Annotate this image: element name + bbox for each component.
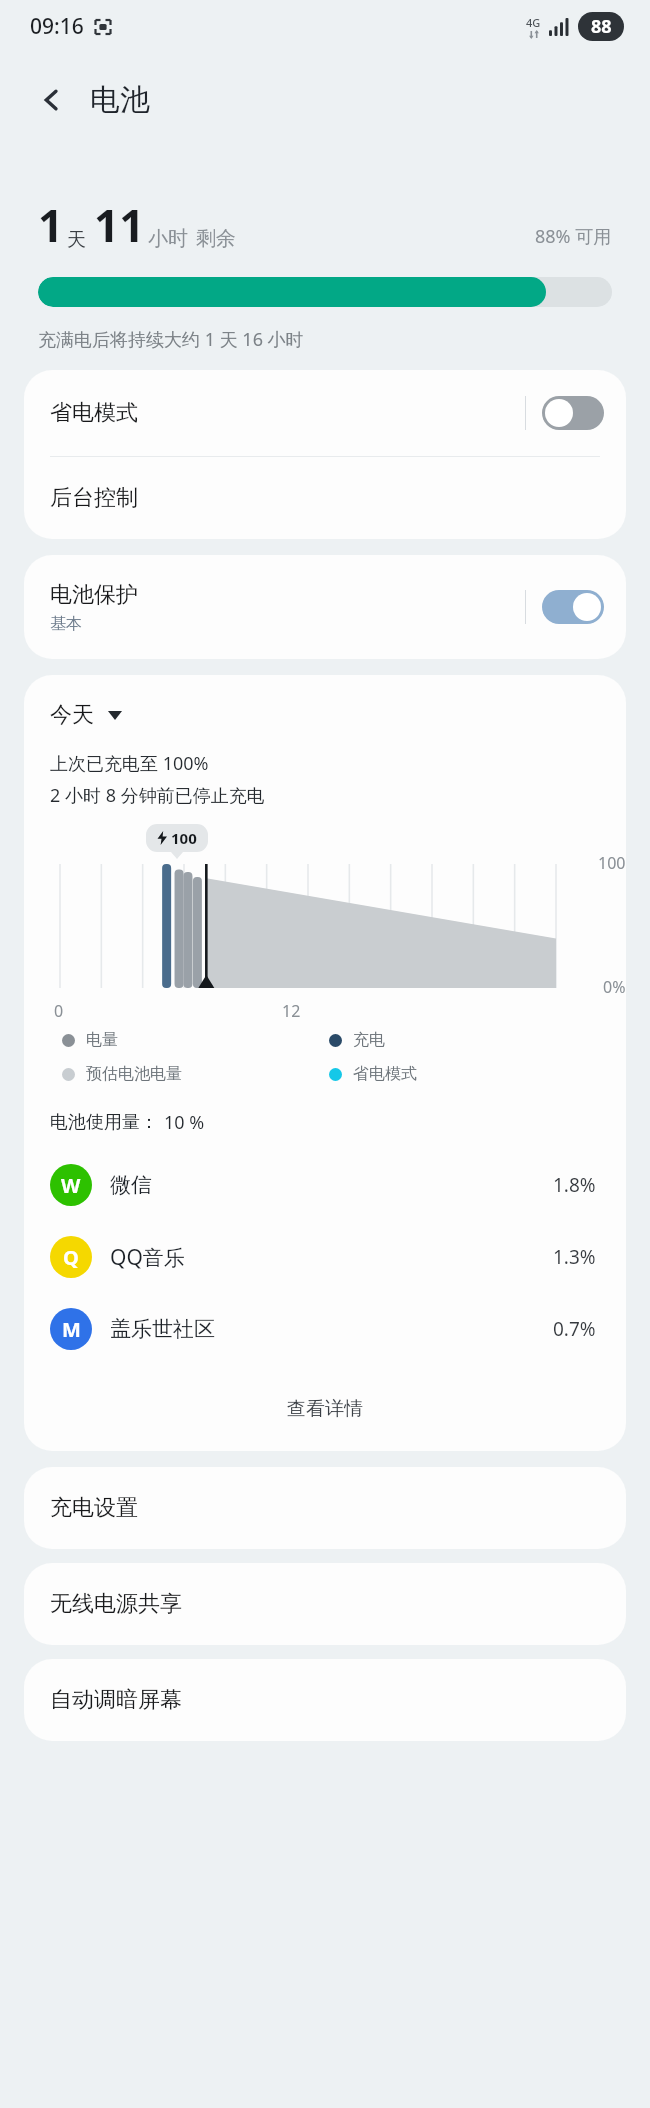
button[interactable]: Q — [24, 1221, 626, 1293]
staticText: 12 — [282, 1000, 301, 1022]
staticText: M — [62, 1316, 81, 1343]
staticText: 今天 — [50, 701, 94, 729]
staticText: 2 小时 8 分钟前已停止充电 — [50, 783, 265, 808]
staticText: 100 — [598, 852, 626, 874]
button[interactable]: 自动调暗屏幕 — [24, 1659, 626, 1741]
button[interactable]: 今天 — [50, 701, 122, 729]
staticText: QQ音乐 — [110, 1243, 185, 1272]
button[interactable]: 充电设置 — [24, 1467, 626, 1549]
staticText: 上次已充电至 100% — [50, 751, 209, 776]
staticText: 查看详情 — [287, 1397, 363, 1421]
staticText: 电池 — [90, 81, 150, 119]
button[interactable]: 查看详情 — [24, 1373, 626, 1445]
staticText: 省电模式 — [353, 1064, 417, 1084]
staticText: 88 — [591, 14, 612, 39]
staticText: 1 — [38, 195, 64, 255]
staticText: 充电设置 — [50, 1494, 138, 1522]
staticText: 电池使用量： — [50, 1111, 158, 1134]
staticText: 充满电后将持续大约 1 天 16 小时 — [38, 327, 304, 352]
staticText: Q — [63, 1244, 79, 1271]
staticText: 无线电源共享 — [50, 1590, 182, 1618]
button[interactable]: Toggle — [542, 396, 604, 430]
button[interactable]: W — [24, 1149, 626, 1221]
button[interactable]: Toggle — [542, 590, 604, 624]
button[interactable]: 后台控制 — [24, 457, 626, 539]
staticText: 天 — [67, 228, 86, 252]
staticText: 0% — [603, 976, 626, 998]
button[interactable]: 电池保护 — [24, 555, 626, 659]
staticText: 1.3% — [553, 1244, 596, 1270]
staticText: 1.8% — [553, 1172, 596, 1198]
staticText: 电量 — [86, 1030, 118, 1050]
button[interactable]: 省电模式 — [24, 370, 626, 456]
staticText: 小时 — [148, 226, 188, 251]
staticText: 电池保护 — [50, 581, 138, 609]
staticText: 11 — [94, 195, 145, 255]
staticText: 0.7% — [553, 1316, 596, 1342]
staticText: W — [61, 1172, 81, 1199]
staticText: 0 — [54, 1000, 64, 1022]
staticText: 剩余 — [196, 226, 236, 251]
staticText: 09:16 — [30, 12, 84, 41]
staticText: 微信 — [110, 1172, 152, 1198]
staticText: 自动调暗屏幕 — [50, 1686, 182, 1714]
staticText: 4G — [526, 15, 541, 30]
staticText: 省电模式 — [50, 399, 138, 427]
staticText: 充电 — [353, 1030, 385, 1050]
staticText: 100 — [171, 828, 197, 848]
button[interactable]: Back — [28, 76, 76, 124]
staticText: 预估电池电量 — [86, 1064, 182, 1084]
staticText: 10 % — [164, 1110, 205, 1135]
button[interactable]: 无线电源共享 — [24, 1563, 626, 1645]
staticText: 盖乐世社区 — [110, 1316, 215, 1342]
button[interactable]: M — [24, 1293, 626, 1365]
staticText: 88% 可用 — [535, 224, 612, 249]
staticText: 后台控制 — [50, 484, 138, 512]
staticText: 基本 — [50, 614, 82, 634]
